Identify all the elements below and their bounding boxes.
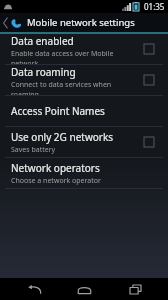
- button[interactable]: Data enabled: [0, 34, 168, 64]
- staticText: Mobile network settings: [27, 16, 135, 29]
- staticText: Enable data access over Mobile network: [11, 49, 138, 64]
- button[interactable]: Use only 2G networks: [0, 127, 168, 157]
- button[interactable]: Use only 2G networks: [138, 131, 160, 153]
- button[interactable]: Access Point Names: [0, 96, 168, 126]
- staticText: Data enabled: [11, 34, 74, 48]
- staticText: Use only 2G networks: [11, 130, 114, 144]
- staticText: Network operators: [11, 161, 100, 175]
- button[interactable]: Data roaming: [138, 69, 160, 91]
- staticText: Access Point Names: [11, 104, 105, 118]
- button[interactable]: Back: [17, 278, 51, 300]
- button[interactable]: Data enabled: [138, 38, 160, 60]
- staticText: Choose a network operator: [11, 176, 101, 186]
- button[interactable]: Data roaming: [0, 65, 168, 95]
- staticText: Saves battery: [11, 145, 56, 155]
- button[interactable]: Recent apps: [118, 278, 152, 300]
- button[interactable]: Network operators: [0, 158, 168, 188]
- staticText: Data roaming: [11, 65, 76, 79]
- button[interactable]: Home: [67, 278, 101, 300]
- button[interactable]: Up, Mobile network settings: [0, 13, 168, 32]
- staticText: 01:35: [144, 1, 165, 12]
- staticText: Connect to data services when roaming: [11, 80, 138, 95]
